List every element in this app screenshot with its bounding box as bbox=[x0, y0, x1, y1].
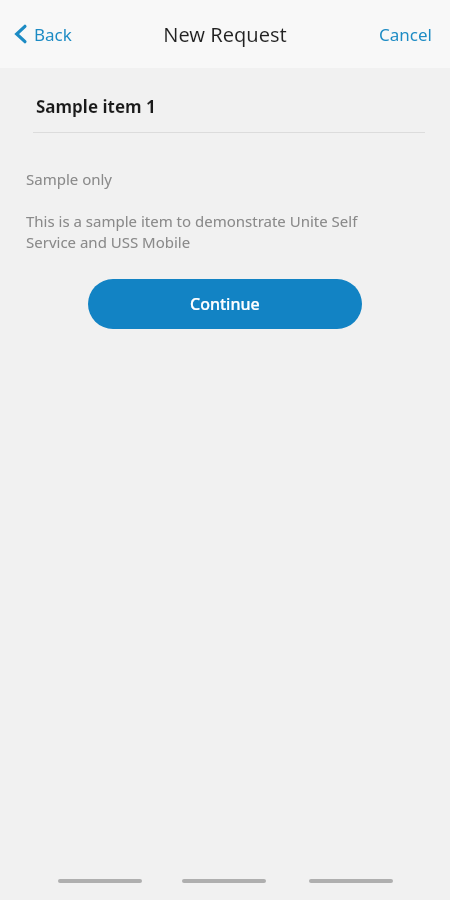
staticText: Back bbox=[34, 23, 72, 46]
button[interactable]: Home bbox=[182, 879, 266, 883]
button[interactable]: Back bbox=[8, 16, 76, 52]
button[interactable]: Recent apps bbox=[58, 879, 142, 883]
staticText: Sample item 1 bbox=[36, 95, 156, 118]
staticText: Continue bbox=[190, 293, 260, 315]
button[interactable]: Continue bbox=[88, 279, 362, 329]
staticText: Sample only bbox=[26, 169, 112, 189]
staticText: Cancel bbox=[379, 23, 432, 46]
button[interactable]: Cancel bbox=[373, 17, 438, 52]
staticText: New Request bbox=[163, 21, 287, 48]
staticText: This is a sample item to demonstrate Uni… bbox=[26, 211, 400, 253]
button[interactable]: Back bbox=[309, 879, 393, 883]
